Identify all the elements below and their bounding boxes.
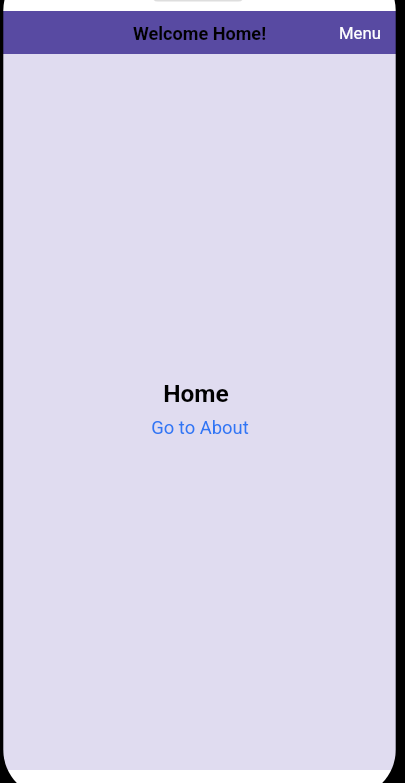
button[interactable]: Go to About <box>133 409 267 447</box>
button[interactable]: Menu <box>325 13 397 55</box>
staticText: Menu <box>339 24 381 44</box>
staticText: Home <box>163 379 229 408</box>
staticText: Go to About <box>151 417 249 439</box>
staticText: Welcome Home! <box>133 23 267 44</box>
